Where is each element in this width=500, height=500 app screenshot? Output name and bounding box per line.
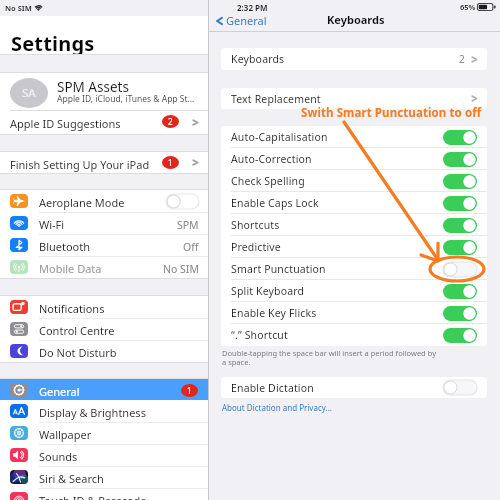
staticText: Wallpaper	[39, 427, 92, 442]
staticText: Wi-Fi	[39, 217, 65, 232]
staticText: Swith Smart Punctuation to off	[301, 105, 482, 121]
button[interactable]: Toggle Check Spelling	[443, 174, 477, 189]
button[interactable]: Do Not Disturb	[0, 340, 208, 362]
button[interactable]: Finish Setting Up Your iPad	[0, 152, 208, 173]
staticText: No SIM	[163, 262, 199, 276]
staticText: Apple ID, iCloud, iTunes & App St...	[57, 93, 195, 105]
button[interactable]: General	[0, 379, 208, 401]
button[interactable]: Apple ID Suggestions	[0, 110, 208, 134]
staticText: Check Spelling	[231, 174, 305, 188]
staticText: Keyboards	[231, 52, 285, 66]
staticText: Touch ID & Passcode	[39, 493, 147, 500]
button[interactable]: Siri & Search	[0, 466, 208, 488]
staticText: General	[39, 384, 80, 399]
button[interactable]: Sounds	[0, 444, 208, 466]
button[interactable]: Toggle Enable Key Flicks	[443, 306, 477, 321]
staticText: 65%	[460, 2, 476, 12]
staticText: Auto-Correction	[231, 152, 312, 166]
button[interactable]: Toggle Aeroplane Mode	[166, 194, 199, 209]
staticText: Predictive	[231, 240, 281, 254]
staticText: SPM	[177, 218, 199, 232]
staticText: Text Replacement	[231, 92, 321, 106]
button[interactable]: Keyboards	[221, 48, 487, 70]
button[interactable]: Toggle Predictive	[443, 240, 477, 255]
staticText: Notifications	[39, 301, 105, 316]
staticText: SPM Assets	[57, 78, 129, 96]
staticText: Display & Brightness	[39, 405, 146, 420]
button[interactable]: Enable Dictation	[221, 377, 487, 398]
staticText: Enable Caps Lock	[231, 196, 319, 210]
staticText: Bluetooth	[39, 239, 91, 254]
button[interactable]: Enable Key Flicks	[221, 302, 487, 324]
staticText: Off	[183, 240, 199, 254]
staticText: Siri & Search	[39, 471, 104, 486]
staticText: Apple ID Suggestions	[10, 116, 121, 131]
staticText: Enable Key Flicks	[231, 306, 317, 320]
staticText: Control Centre	[39, 323, 115, 338]
button[interactable]: Display & Brightness	[0, 400, 208, 422]
button[interactable]: “.” Shortcut	[221, 324, 487, 346]
button[interactable]: Toggle Shortcuts	[443, 218, 477, 233]
staticText: Finish Setting Up Your iPad	[10, 157, 150, 172]
button[interactable]: Back to General	[215, 13, 268, 28]
button[interactable]: Auto-Correction	[221, 148, 487, 170]
staticText: “.” Shortcut	[231, 328, 288, 342]
button[interactable]: Wallpaper	[0, 422, 208, 444]
button[interactable]: Toggle Auto-Correction	[443, 152, 477, 167]
button[interactable]: Toggle Enable Dictation	[443, 380, 477, 395]
button[interactable]: Touch ID & Passcode	[0, 488, 208, 500]
staticText: Sounds	[39, 449, 78, 464]
staticText: Smart Punctuation	[231, 262, 326, 276]
staticText: Do Not Disturb	[39, 345, 117, 360]
staticText: 2	[459, 52, 465, 66]
button[interactable]: Check Spelling	[221, 170, 487, 192]
staticText: About Dictation and Privacy...	[222, 402, 332, 413]
button[interactable]: Shortcuts	[221, 214, 487, 236]
button[interactable]: Toggle Auto-Capitalisation	[443, 130, 477, 145]
staticText: Enable Dictation	[231, 381, 314, 395]
button[interactable]: Bluetooth	[0, 234, 208, 256]
button[interactable]: Split Keyboard	[221, 280, 487, 302]
staticText: Mobile Data	[39, 261, 102, 276]
button[interactable]: Toggle Split Keyboard	[443, 284, 477, 299]
button[interactable]: Mobile Data	[0, 256, 208, 278]
staticText: Auto-Capitalisation	[231, 130, 328, 144]
button[interactable]: Aeroplane Mode	[0, 190, 208, 212]
button[interactable]: Control Centre	[0, 318, 208, 340]
staticText: 1	[168, 157, 173, 168]
staticText: General	[226, 13, 267, 28]
button[interactable]: SA	[0, 73, 208, 110]
staticText: 2:32 PM	[237, 2, 268, 13]
staticText: Double-tapping the space bar will insert…	[222, 348, 436, 368]
staticText: 2	[168, 116, 173, 127]
staticText: SA	[22, 85, 36, 101]
staticText: Aeroplane Mode	[39, 195, 125, 210]
button[interactable]: Notifications	[0, 296, 208, 318]
staticText: Shortcuts	[231, 218, 280, 232]
staticText: Keyboards	[327, 12, 385, 27]
button[interactable]: Text Replacement	[221, 88, 487, 109]
button[interactable]: Enable Caps Lock	[221, 192, 487, 214]
staticText: Settings	[11, 30, 95, 57]
button[interactable]: Smart Punctuation	[221, 258, 487, 280]
button[interactable]: Wi-Fi	[0, 212, 208, 234]
button[interactable]: Toggle Smart Punctuation	[443, 262, 477, 277]
button[interactable]: Predictive	[221, 236, 487, 258]
staticText: Split Keyboard	[231, 284, 305, 298]
button[interactable]: Toggle “.” Shortcut	[443, 328, 477, 343]
button[interactable]: Auto-Capitalisation	[221, 126, 487, 148]
staticText: 1	[187, 385, 192, 396]
button[interactable]: Toggle Enable Caps Lock	[443, 196, 477, 211]
button[interactable]: About Dictation and Privacy...	[222, 402, 332, 413]
staticText: No SIM	[5, 3, 32, 13]
